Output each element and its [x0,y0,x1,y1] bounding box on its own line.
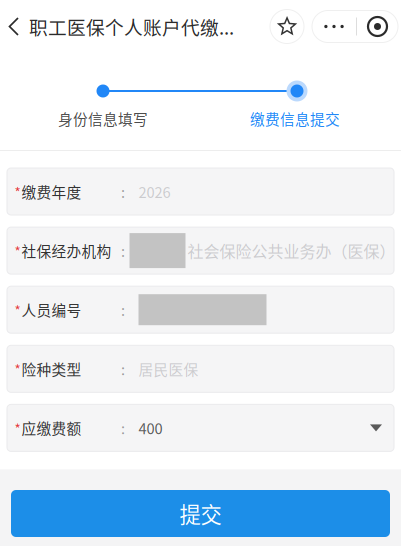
staticText: * [14,241,20,260]
staticText: * [14,182,20,201]
button[interactable]: * [7,404,394,451]
button[interactable]: Back [2,3,26,49]
staticText: 2026 [138,181,170,202]
button[interactable]: * [7,168,394,215]
button[interactable]: Favourite [270,9,304,43]
staticText: 社会保险公共业务办（医保） [187,239,395,262]
button[interactable]: * [7,286,394,333]
button[interactable]: More [312,10,398,42]
button[interactable]: * [7,345,394,392]
staticText: 应缴费额 [21,417,81,438]
staticText: 居民医保 [138,358,198,379]
staticText: 人员编号 [21,299,81,320]
staticText: 400 [138,417,162,438]
staticText: 提交 [179,498,221,529]
staticText: 身份信息填写 [58,108,148,129]
staticText: 缴费信息提交 [250,108,340,129]
button[interactable]: * [7,227,394,274]
staticText: : [121,181,125,202]
staticText: : [121,299,125,320]
staticText: * [14,359,20,378]
staticText: * [14,300,20,319]
staticText: 职工医保个人账户代缴... [29,13,234,40]
staticText: * [14,418,20,437]
staticText: 缴费年度 [21,181,81,202]
staticText: : [121,240,125,261]
staticText: : [121,358,125,379]
staticText: 险种类型 [21,358,81,379]
staticText: 社保经办机构 [21,240,111,261]
button[interactable]: 提交 [11,490,390,537]
staticText: : [121,417,125,438]
